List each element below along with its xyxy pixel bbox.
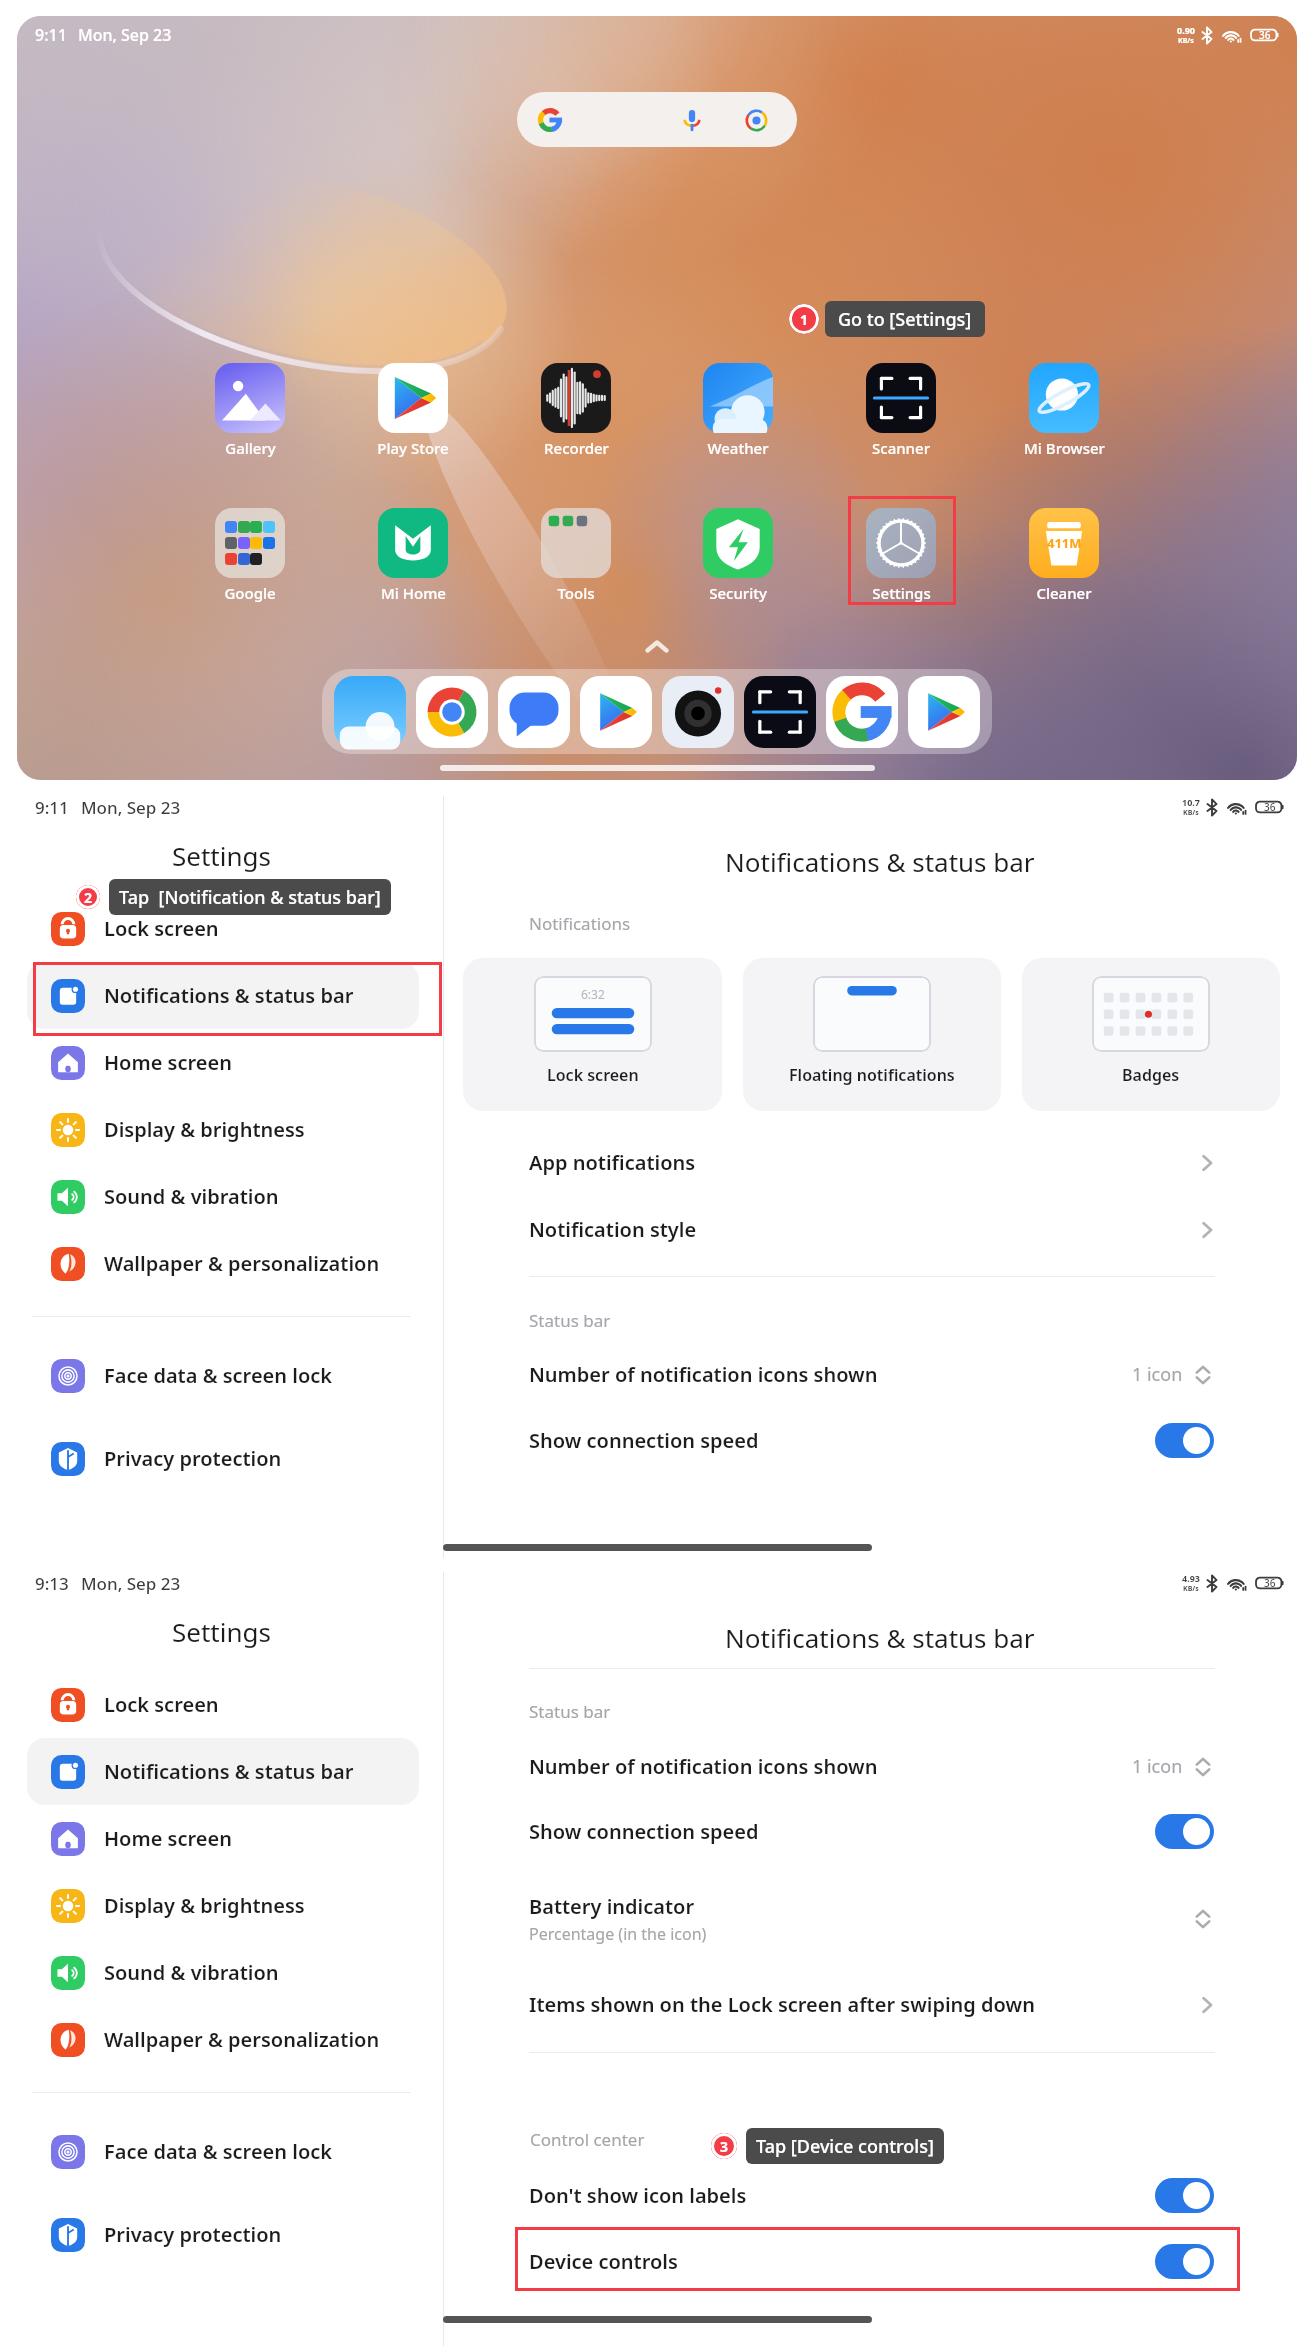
button[interactable]: Show connection speed xyxy=(444,1798,1314,1865)
button[interactable]: Voice search xyxy=(673,101,711,139)
staticText: Lock screen xyxy=(547,1064,639,1086)
staticText: Mon, Sep 23 xyxy=(81,1572,181,1595)
button[interactable]: Scanner xyxy=(841,363,961,458)
button[interactable]: 6:32 xyxy=(463,958,722,1111)
button[interactable]: Security xyxy=(678,508,798,603)
button[interactable]: Scanner xyxy=(739,669,821,754)
button[interactable]: App notifications xyxy=(444,1129,1314,1196)
button[interactable]: Home screen xyxy=(27,1805,419,1872)
button[interactable]: Wallpaper & personalization xyxy=(27,2006,419,2073)
staticText: Lock screen xyxy=(104,915,219,942)
staticText: 1 icon xyxy=(1132,1362,1183,1387)
staticText: 36 xyxy=(1264,800,1276,814)
staticText: Status bar xyxy=(529,1700,611,1723)
staticText: Notifications & status bar xyxy=(725,1620,1035,1655)
button[interactable]: Camera xyxy=(657,669,739,754)
button[interactable]: Google Lens xyxy=(737,101,775,139)
button[interactable]: Floating notifications xyxy=(743,958,1001,1111)
staticText: Percentage (in the icon) xyxy=(529,1923,707,1945)
button[interactable]: Play Store xyxy=(353,363,473,458)
button[interactable]: Open app drawer xyxy=(630,620,684,674)
staticText: Settings xyxy=(172,1614,271,1649)
staticText: Don't show icon labels xyxy=(529,2182,747,2209)
staticText: 6:32 xyxy=(581,986,605,1002)
button[interactable]: Google xyxy=(821,669,903,754)
button[interactable]: Sound & vibration xyxy=(27,1939,419,2006)
button[interactable]: Play Store xyxy=(575,669,657,754)
button[interactable]: Badges xyxy=(1022,958,1280,1111)
staticText: Notification style xyxy=(529,1216,697,1243)
button[interactable]: Home screen xyxy=(27,1029,419,1096)
staticText: Home screen xyxy=(104,1825,232,1852)
button[interactable]: Weather xyxy=(678,363,798,458)
staticText: Play Store xyxy=(377,438,449,458)
button[interactable]: Display & brightness xyxy=(27,1096,419,1163)
button[interactable]: Tools xyxy=(516,508,636,603)
staticText: Notifications & status bar xyxy=(725,844,1035,879)
staticText: Tap [Device controls] xyxy=(756,2134,934,2159)
button[interactable]: Battery indicator xyxy=(444,1880,1314,1958)
staticText: Wallpaper & personalization xyxy=(104,2026,380,2053)
staticText: Gallery xyxy=(225,438,276,458)
staticText: Battery indicator xyxy=(529,1893,695,1920)
button[interactable]: Chrome xyxy=(411,669,493,754)
button[interactable]: 411M xyxy=(1004,508,1124,603)
button[interactable]: Settings xyxy=(841,508,961,603)
button[interactable]: Lock screen xyxy=(27,1671,419,1738)
staticText: Badges xyxy=(1122,1064,1180,1086)
button[interactable]: Notifications & status bar xyxy=(27,1738,419,1805)
staticText: Tools xyxy=(557,583,595,603)
button[interactable]: Sound & vibration xyxy=(27,1163,419,1230)
button[interactable]: Wallpaper & personalization xyxy=(27,1230,419,1297)
button[interactable]: Show connection speed xyxy=(444,1407,1314,1474)
staticText: Control center xyxy=(530,2128,645,2151)
staticText: Privacy protection xyxy=(104,1445,282,1472)
staticText: Show connection speed xyxy=(529,1818,759,1845)
staticText: Tap [Notification & status bar] xyxy=(119,885,381,910)
button[interactable]: Don't show icon labels xyxy=(444,2162,1314,2229)
staticText: 9:11 xyxy=(35,796,69,819)
staticText: Notifications xyxy=(529,912,631,935)
staticText: Sound & vibration xyxy=(104,1959,279,1986)
staticText: Security xyxy=(709,583,767,603)
staticText: 10.7 xyxy=(1182,796,1200,808)
button[interactable]: Messages xyxy=(493,669,575,754)
button[interactable]: Display & brightness xyxy=(27,1872,419,1939)
staticText: Recorder xyxy=(544,438,609,458)
button[interactable]: Face data & screen lock xyxy=(27,1342,419,1409)
button[interactable]: Google xyxy=(190,508,310,603)
button[interactable]: Notification style xyxy=(444,1196,1314,1263)
button[interactable]: Mi Home xyxy=(353,508,473,603)
staticText: Scanner xyxy=(872,438,930,458)
button[interactable]: Gallery xyxy=(329,669,411,754)
button[interactable]: Items shown on the Lock screen after swi… xyxy=(444,1971,1314,2038)
button[interactable]: Notifications & status bar xyxy=(27,962,419,1029)
button[interactable]: Google search xyxy=(517,92,797,147)
button[interactable]: Play xyxy=(903,669,985,754)
button[interactable]: Device controls xyxy=(444,2228,1314,2295)
staticText: Items shown on the Lock screen after swi… xyxy=(529,1991,1035,2018)
staticText: Go to [Settings] xyxy=(838,307,972,332)
button[interactable]: Face data & screen lock xyxy=(27,2118,419,2185)
staticText: App notifications xyxy=(529,1149,696,1176)
button[interactable]: Recorder xyxy=(516,363,636,458)
button[interactable]: Number of notification icons shown xyxy=(444,1733,1314,1800)
staticText: Display & brightness xyxy=(104,1892,305,1919)
staticText: Weather xyxy=(707,438,769,458)
button[interactable]: Privacy protection xyxy=(27,1425,419,1492)
staticText: Mon, Sep 23 xyxy=(81,796,181,819)
button[interactable]: Number of notification icons shown xyxy=(444,1341,1314,1408)
staticText: 36 xyxy=(1264,1576,1276,1590)
staticText: KB/s xyxy=(1183,808,1199,818)
staticText: 0.90 xyxy=(1177,24,1195,36)
staticText: 411M xyxy=(1047,534,1082,552)
staticText: Notifications & status bar xyxy=(104,1758,354,1785)
button[interactable]: Mi Browser xyxy=(1004,363,1124,458)
button[interactable]: Privacy protection xyxy=(27,2201,419,2268)
button[interactable]: Lock screen xyxy=(27,895,419,962)
staticText: 4.93 xyxy=(1182,1572,1200,1584)
button[interactable]: Gallery xyxy=(190,363,310,458)
staticText: Wallpaper & personalization xyxy=(104,1250,380,1277)
staticText: Settings xyxy=(172,838,271,873)
staticText: Mi Home xyxy=(381,583,446,603)
